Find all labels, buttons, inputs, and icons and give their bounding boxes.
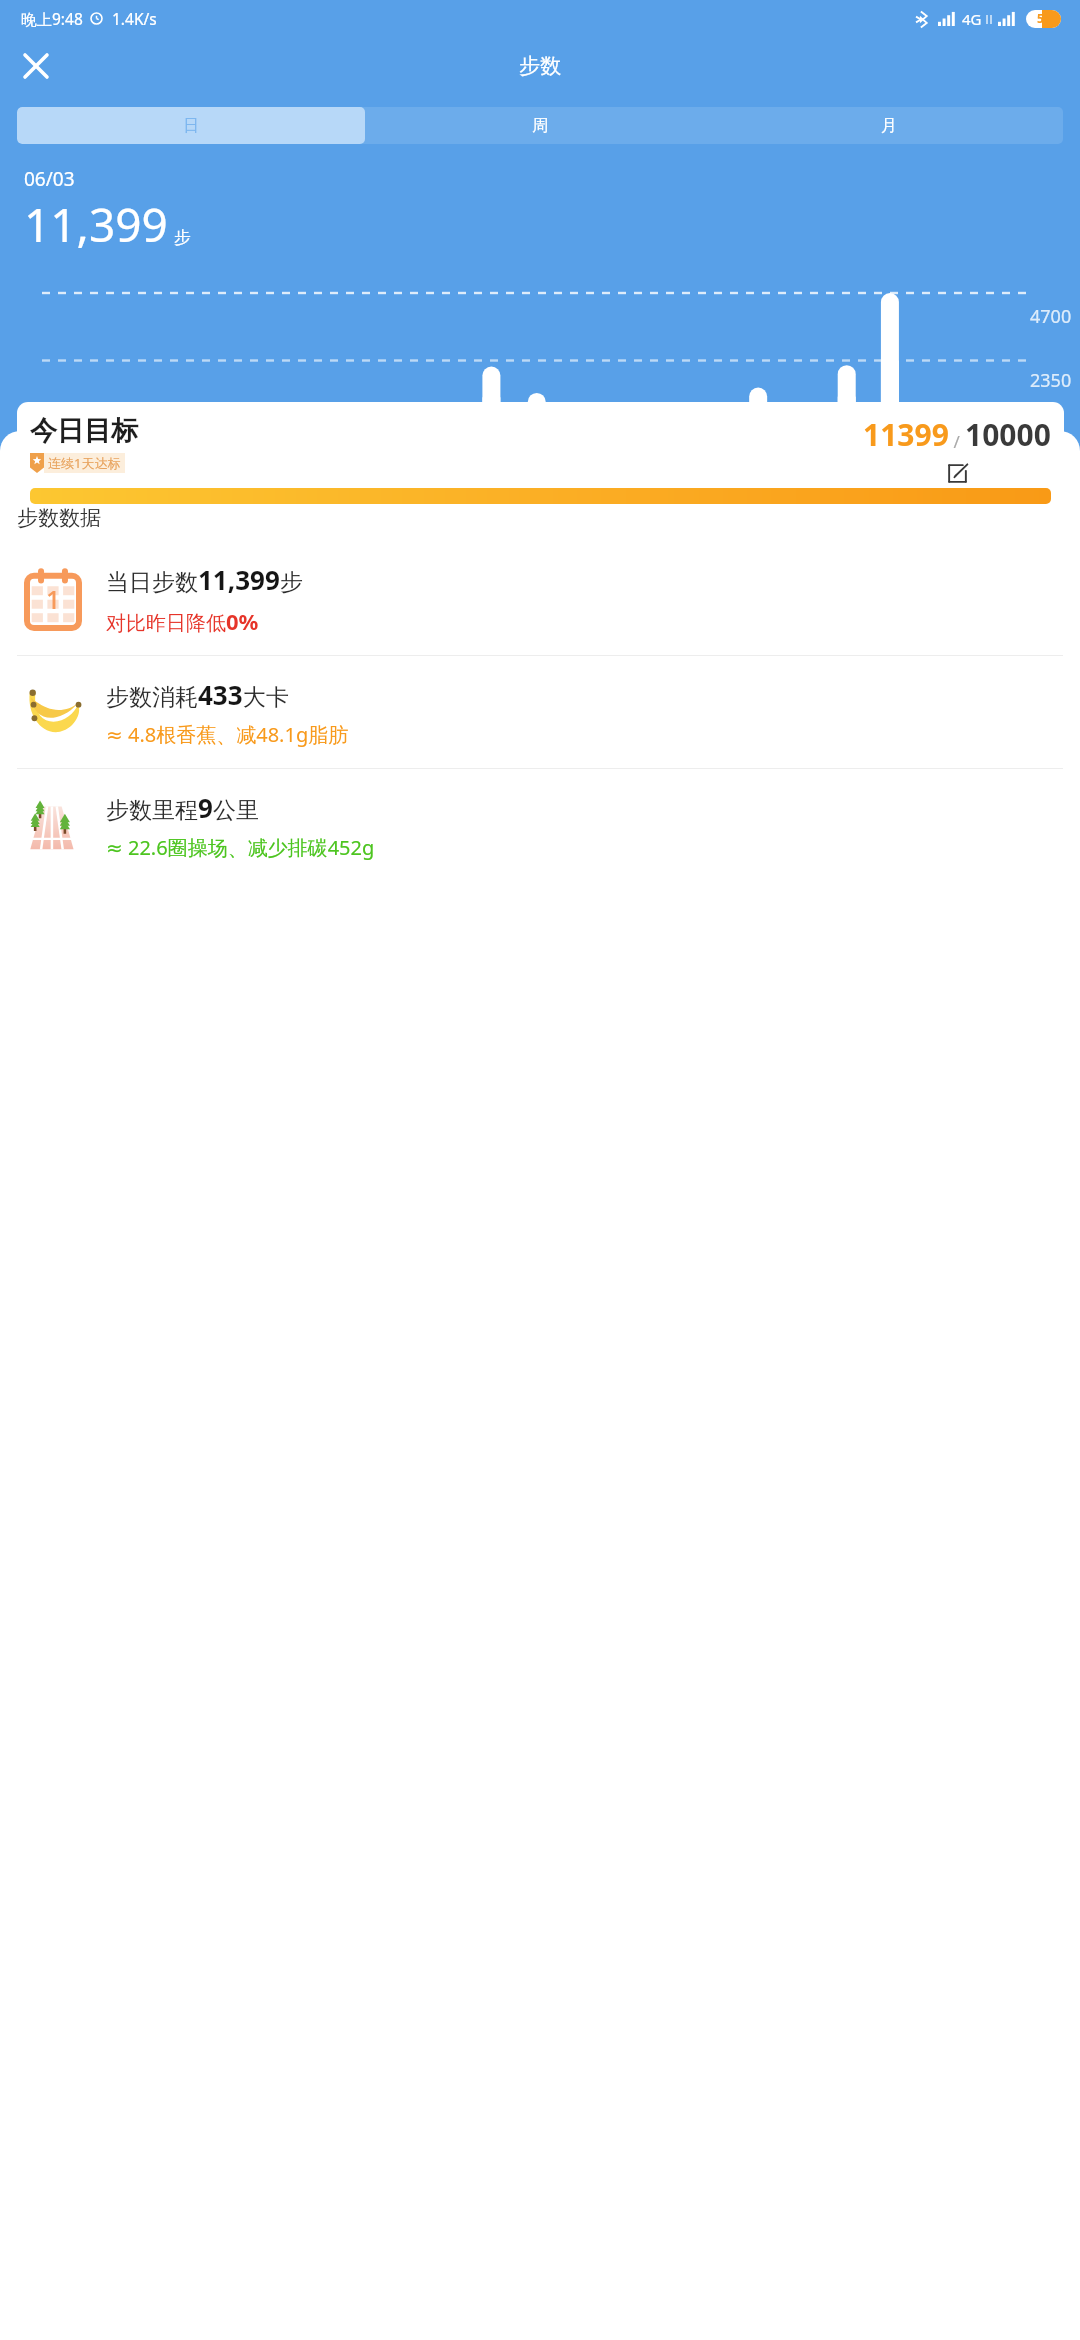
staticText: 步数里程: [106, 796, 198, 825]
staticText: 4700: [1030, 304, 1072, 329]
button[interactable]: 步数里程: [0, 769, 1080, 881]
staticText: 当日步数: [106, 568, 198, 597]
staticText: 57: [1037, 11, 1051, 27]
staticText: 24:00: [989, 431, 1036, 456]
staticText: 月: [881, 116, 897, 136]
button[interactable]: Edit goal: [942, 458, 972, 488]
button[interactable]: 周: [365, 107, 714, 144]
staticText: 06/03: [24, 166, 75, 192]
staticText: 10000: [965, 414, 1051, 455]
staticText: 433: [198, 677, 243, 712]
button[interactable]: 步数消耗: [0, 656, 1080, 768]
button[interactable]: 月: [714, 107, 1063, 144]
staticText: 9: [198, 790, 213, 825]
staticText: ≈ 4.8根香蕉、减48.1g脂肪: [106, 721, 349, 748]
staticText: 周: [532, 116, 548, 136]
staticText: 步数数据: [17, 505, 101, 531]
staticText: 手机补录: [561, 470, 629, 491]
button[interactable]: Previous: [0, 422, 42, 464]
button[interactable]: 1: [0, 543, 1080, 655]
staticText: 对比昨日降低: [106, 611, 226, 636]
staticText: 晚上9:48: [21, 8, 83, 29]
staticText: 手环步数: [467, 470, 535, 491]
staticText: 步: [174, 227, 191, 248]
button[interactable]: 日: [17, 107, 365, 144]
staticText: 11399: [863, 414, 949, 455]
button[interactable]: 今日目标: [17, 402, 1064, 504]
staticText: 连续1天达标: [48, 454, 121, 472]
button[interactable]: Close: [12, 42, 60, 90]
staticText: 0%: [226, 606, 259, 636]
staticText: 1: [46, 582, 61, 616]
staticText: 2350: [1030, 368, 1072, 393]
staticText: 大卡: [243, 683, 289, 712]
staticText: ≈ 22.6圈操场、减少排碳452g: [106, 834, 375, 861]
staticText: 11,399: [198, 562, 280, 597]
staticText: 公里: [213, 796, 259, 825]
staticText: 11,399: [24, 193, 168, 256]
staticText: 4G: [962, 9, 982, 29]
staticText: 今日目标: [30, 414, 138, 448]
staticText: 步数消耗: [106, 683, 198, 712]
staticText: 步数: [519, 53, 561, 79]
staticText: 步: [280, 568, 303, 597]
staticText: 日: [183, 116, 199, 136]
staticText: /: [949, 430, 965, 453]
staticText: 1.4K/s: [112, 8, 157, 29]
staticText: 0:00: [42, 431, 78, 456]
